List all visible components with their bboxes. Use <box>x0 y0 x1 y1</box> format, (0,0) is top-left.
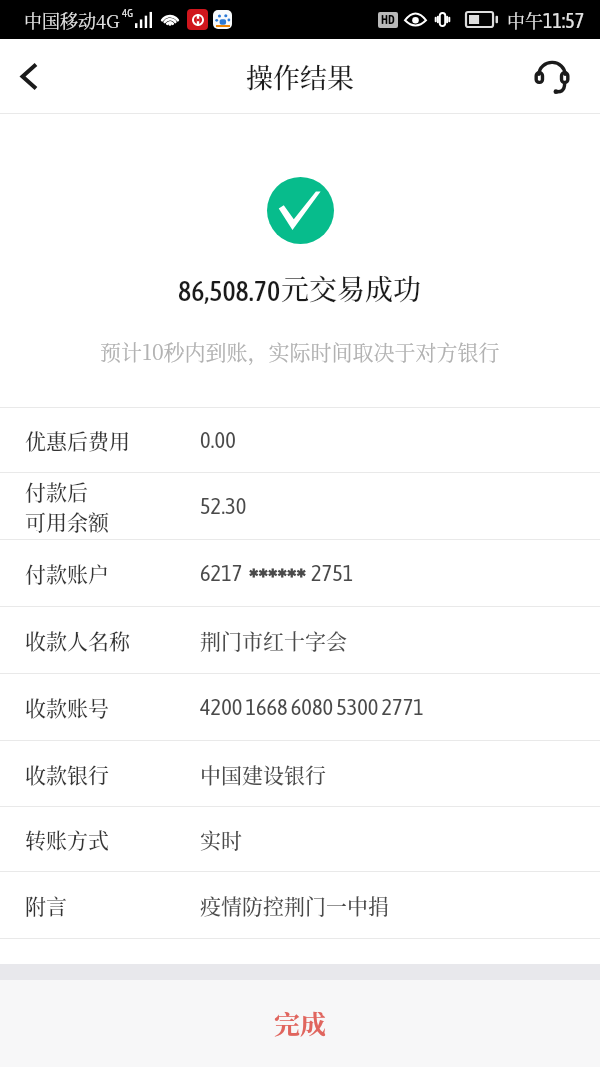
staticText: 6217 <box>200 560 243 586</box>
staticText: 中国移动4G <box>24 7 120 33</box>
staticText: 付款后 <box>25 476 88 506</box>
staticText: 疫情防控荆门一中捐 <box>200 890 389 920</box>
button[interactable]: 附言 <box>0 872 600 939</box>
staticText: 4200 1668 6080 5300 2771 <box>200 694 424 720</box>
staticText: 转账方式 <box>25 824 109 854</box>
staticText: 2751 <box>311 560 354 586</box>
button[interactable]: 完成 <box>0 980 600 1067</box>
staticText: 86,508.70 <box>178 275 281 307</box>
staticText: 4G <box>122 7 133 20</box>
button[interactable]: Back <box>0 39 56 113</box>
button[interactable]: 转账方式 <box>0 807 600 872</box>
staticText: 11:57 <box>543 9 585 32</box>
staticText: 中国建设银行 <box>200 759 326 789</box>
button[interactable]: 优惠后费用 <box>0 408 600 473</box>
staticText: 中午 <box>507 7 543 33</box>
staticText: 实时 <box>200 824 242 854</box>
button[interactable]: 付款账户 <box>0 540 600 607</box>
button[interactable]: 收款银行 <box>0 741 600 807</box>
staticText: 收款账号 <box>25 692 109 722</box>
staticText: HD <box>381 13 395 27</box>
staticText: 收款银行 <box>25 759 109 789</box>
staticText: 操作结果 <box>246 57 354 96</box>
staticText: 完成 <box>274 1004 327 1041</box>
staticText: 优惠后费用 <box>25 425 130 455</box>
staticText: 52.30 <box>200 493 247 519</box>
staticText: 付款账户 <box>25 558 109 588</box>
staticText: 收款人名称 <box>25 625 130 655</box>
staticText: 可用余额 <box>25 506 109 536</box>
button[interactable]: 收款账号 <box>0 674 600 741</box>
staticText: 荆门市红十字会 <box>200 625 347 655</box>
staticText: 0.00 <box>200 427 236 453</box>
button[interactable]: 收款人名称 <box>0 607 600 674</box>
staticText: 元交易成功 <box>281 268 422 308</box>
staticText: 附言 <box>25 890 67 920</box>
staticText: 预计10秒内到账，实际时间取决于对方银行 <box>100 336 500 366</box>
button[interactable]: 付款后 <box>0 473 600 540</box>
button[interactable]: Customer service <box>503 39 600 113</box>
